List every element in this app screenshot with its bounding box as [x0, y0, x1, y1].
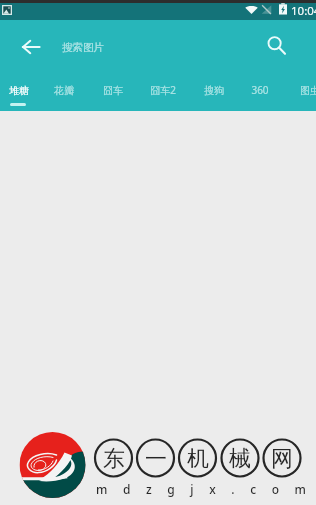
button[interactable]: 囧车2: [138, 77, 188, 103]
staticText: 囧车2: [150, 83, 176, 97]
staticText: 花瓣: [54, 84, 74, 97]
button[interactable]: Back: [11, 27, 51, 67]
staticText: 机: [187, 445, 209, 471]
staticText: mdzgjx.com: [96, 481, 316, 497]
button[interactable]: 花瓣: [39, 77, 89, 103]
staticText: 囧车: [103, 84, 123, 97]
staticText: 图虫: [300, 84, 316, 97]
button[interactable]: 360: [235, 77, 285, 103]
staticText: 东: [103, 445, 125, 471]
staticText: 械: [229, 445, 251, 471]
staticText: 一: [145, 445, 167, 471]
staticText: 10:04: [291, 3, 316, 19]
button[interactable]: Search: [256, 24, 300, 68]
staticText: 360: [251, 83, 269, 97]
button[interactable]: 搜狗: [189, 77, 239, 103]
staticText: 网: [271, 445, 293, 471]
staticText: 搜狗: [204, 84, 224, 97]
staticText: 搜索图片: [62, 41, 104, 54]
button[interactable]: 囧车: [88, 77, 138, 103]
staticText: 堆糖: [9, 84, 29, 97]
button[interactable]: 图虫: [285, 77, 316, 103]
button[interactable]: 堆糖: [0, 77, 44, 103]
